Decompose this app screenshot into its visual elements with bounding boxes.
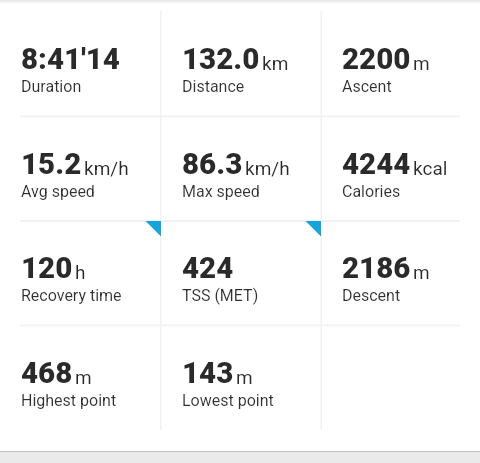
staticText: km (262, 52, 289, 74)
button[interactable]: 8:41'14 (0, 11, 161, 116)
staticText: Max speed (182, 182, 260, 201)
staticText: Recovery time (21, 286, 122, 305)
staticText: 2186 (342, 251, 411, 286)
staticText: m (413, 52, 430, 74)
staticText: Lowest point (182, 391, 274, 410)
staticText: 2200 (342, 42, 411, 77)
staticText: km/h (84, 157, 129, 179)
staticText: km/h (245, 157, 290, 179)
staticText: Ascent (342, 77, 392, 96)
staticText: m (75, 366, 92, 388)
button[interactable]: 120 (0, 220, 161, 325)
staticText: 8:41'14 (21, 42, 120, 77)
button[interactable]: 132.0 (161, 11, 322, 116)
staticText: 468 (21, 356, 73, 391)
staticText: 15.2 (21, 147, 82, 182)
staticText: h (75, 261, 86, 283)
staticText: Calories (342, 182, 401, 201)
button[interactable]: 468 (0, 325, 161, 430)
staticText: 424 (182, 251, 234, 286)
button[interactable]: 4244 (321, 116, 480, 221)
staticText: m (236, 366, 253, 388)
button[interactable]: 2200 (321, 11, 480, 116)
staticText: Distance (182, 77, 245, 96)
staticText: Highest point (21, 391, 117, 410)
button[interactable]: 143 (161, 325, 322, 430)
staticText: m (413, 261, 430, 283)
staticText: TSS (MET) (182, 286, 259, 305)
staticText: 86.3 (182, 147, 243, 182)
staticText: 132.0 (182, 42, 260, 77)
staticText: Descent (342, 286, 401, 305)
button[interactable]: 424 (161, 220, 322, 325)
staticText: kcal (413, 157, 448, 179)
staticText: Duration (21, 77, 82, 96)
staticText: 4244 (342, 147, 411, 182)
staticText: 143 (182, 356, 234, 391)
staticText: 120 (21, 251, 73, 286)
staticText: Avg speed (21, 182, 95, 201)
button[interactable]: 2186 (321, 220, 480, 325)
button[interactable]: 15.2 (0, 116, 161, 221)
button[interactable]: 86.3 (161, 116, 322, 221)
